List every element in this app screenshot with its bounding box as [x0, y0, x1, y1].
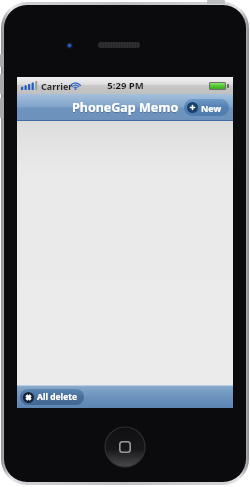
staticText: Carrier [41, 80, 73, 92]
staticText: PhoneGap Memo [72, 100, 179, 117]
staticText: PhoneGap Memo [72, 99, 179, 116]
staticText: New [201, 102, 222, 114]
button[interactable]: New [184, 99, 229, 116]
staticText: All delete [37, 391, 77, 403]
button[interactable]: All delete [20, 389, 84, 405]
button[interactable]: Home [105, 427, 145, 467]
staticText: 5:29 PM [107, 79, 144, 92]
